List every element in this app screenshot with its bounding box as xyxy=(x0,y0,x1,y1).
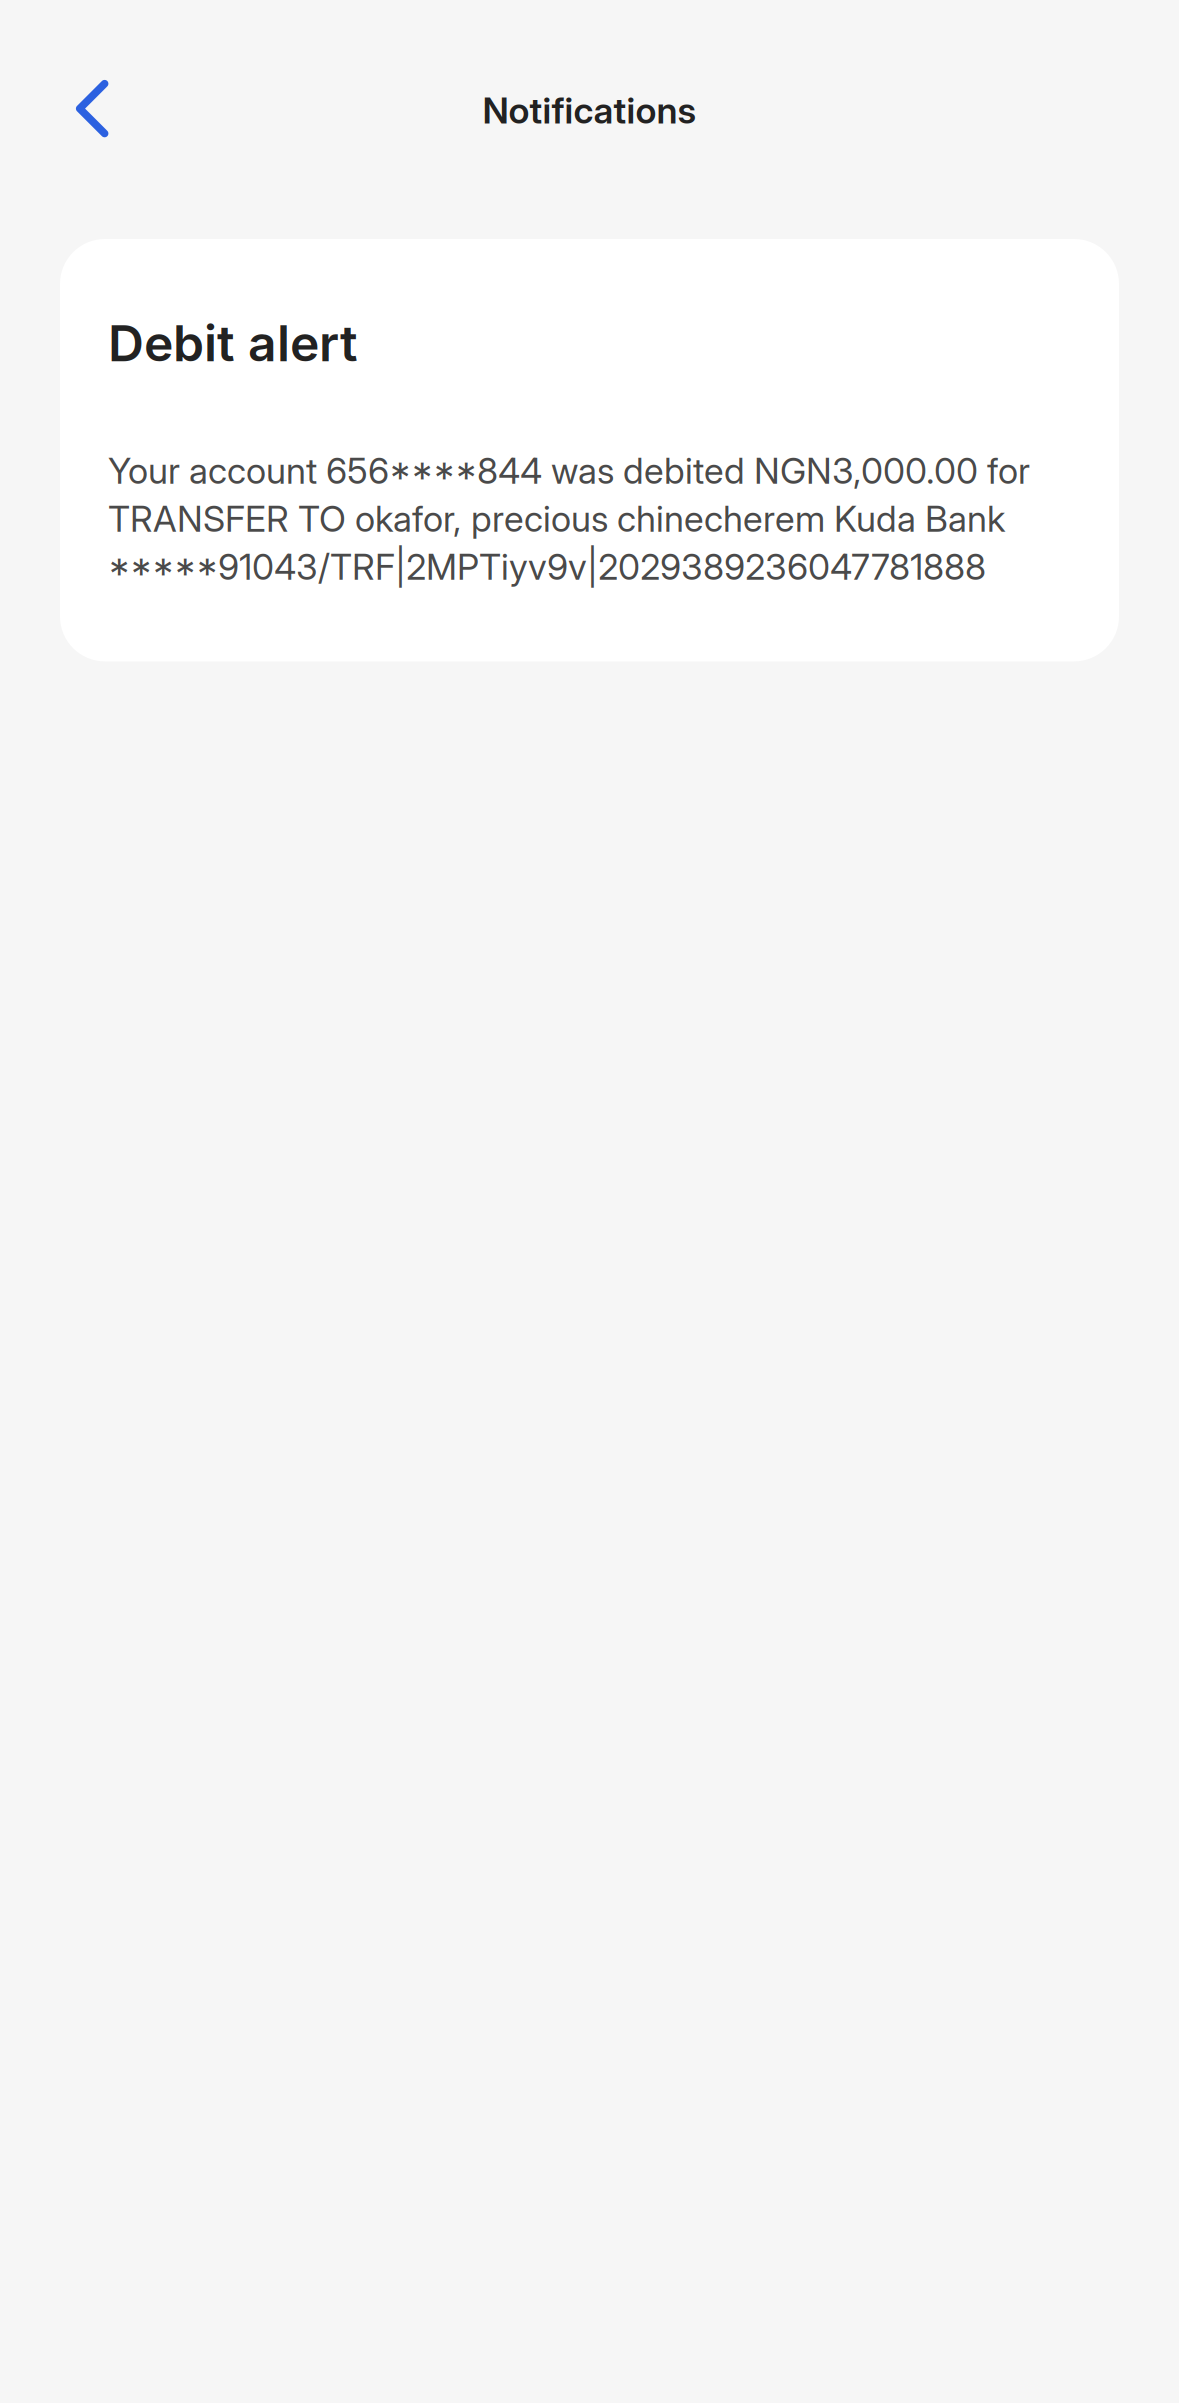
staticText: Debit alert xyxy=(108,313,358,373)
staticText: Your account 656****844 was debited NGN3… xyxy=(108,449,1030,588)
staticText: Notifications xyxy=(482,89,696,132)
button[interactable]: Back xyxy=(46,62,138,154)
